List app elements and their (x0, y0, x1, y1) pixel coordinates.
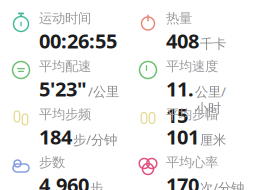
staticText: 平均配速 (39, 58, 91, 74)
staticText: 千卡 (200, 36, 226, 52)
staticText: 厘米 (200, 132, 226, 148)
staticText: /公里 (88, 82, 119, 100)
staticText: 408 (166, 27, 199, 54)
staticText: 170 (166, 171, 199, 190)
staticText: 热量 (166, 10, 192, 26)
staticText: 11.15 (166, 75, 194, 128)
staticText: 101 (166, 123, 199, 150)
staticText: 运动时间 (39, 10, 91, 26)
staticText: 5'23" (39, 75, 87, 102)
staticText: 步 (90, 180, 103, 190)
staticText: 00:26:55 (39, 27, 117, 54)
staticText: 步数 (39, 154, 65, 170)
staticText: 平均心率 (166, 154, 218, 170)
staticText: 步/分钟 (73, 131, 117, 148)
button[interactable]: 运动时间 (0, 10, 127, 54)
button[interactable]: 平均速度 (127, 58, 254, 102)
button[interactable]: 平均步幅 (127, 106, 254, 150)
staticText: 平均步幅 (166, 106, 218, 122)
staticText: 4,960 (39, 171, 89, 190)
staticText: 次/分钟 (200, 179, 244, 190)
button[interactable]: 平均配速 (0, 58, 127, 102)
staticText: 平均速度 (166, 58, 218, 74)
staticText: 公里/小时 (195, 83, 226, 117)
staticText: 184 (39, 123, 72, 150)
button[interactable]: 步数 (0, 154, 127, 190)
button[interactable]: 平均步频 (0, 106, 127, 150)
button[interactable]: 热量 (127, 10, 254, 54)
staticText: 平均步频 (39, 106, 91, 122)
button[interactable]: 平均心率 (127, 154, 254, 190)
